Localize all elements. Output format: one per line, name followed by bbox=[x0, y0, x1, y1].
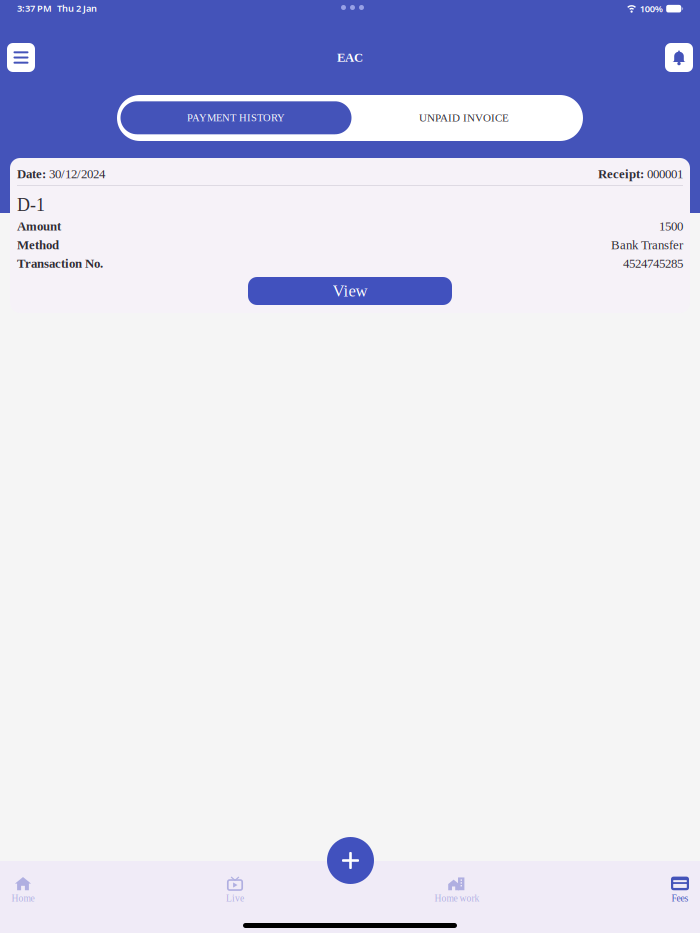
staticText: Home bbox=[11, 893, 34, 903]
staticText: Home work bbox=[434, 893, 479, 903]
button[interactable]: Home work bbox=[422, 877, 492, 903]
button[interactable]: Menu bbox=[7, 43, 35, 72]
button[interactable]: Notifications bbox=[665, 43, 693, 72]
staticText: Transaction No. bbox=[17, 256, 103, 271]
button[interactable]: View bbox=[248, 277, 452, 305]
button[interactable]: Add bbox=[327, 837, 374, 884]
staticText: EAC bbox=[337, 50, 363, 64]
staticText: UNPAID INVOICE bbox=[419, 112, 509, 124]
staticText: Fees bbox=[671, 893, 688, 903]
staticText: Thu 2 Jan bbox=[57, 2, 97, 14]
staticText: Method bbox=[17, 238, 59, 252]
button[interactable]: Fees bbox=[645, 877, 700, 903]
button[interactable]: Home bbox=[0, 877, 58, 903]
staticText: Live bbox=[226, 893, 244, 903]
button[interactable]: Live bbox=[200, 877, 270, 903]
button[interactable]: PAYMENT HISTORY bbox=[120, 101, 351, 134]
staticText: PAYMENT HISTORY bbox=[187, 112, 285, 124]
staticText: Date: 30/12/2024 bbox=[17, 167, 105, 181]
staticText: Amount bbox=[17, 219, 61, 233]
staticText: Bank Transfer bbox=[611, 238, 683, 252]
staticText: D-1 bbox=[17, 195, 45, 215]
staticText: 4524745285 bbox=[623, 256, 683, 271]
button[interactable]: UNPAID INVOICE bbox=[348, 101, 579, 134]
staticText: Receipt: 000001 bbox=[598, 167, 683, 181]
staticText: 3:37 PM bbox=[17, 2, 52, 14]
staticText: 1500 bbox=[659, 219, 683, 233]
staticText: View bbox=[332, 282, 367, 300]
staticText: 100% bbox=[640, 2, 663, 15]
